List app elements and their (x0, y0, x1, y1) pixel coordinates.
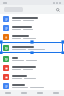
button[interactable] (1, 42, 63, 53)
button[interactable] (0, 32, 64, 41)
button[interactable] (0, 72, 64, 81)
button[interactable] (0, 23, 64, 32)
button[interactable] (0, 63, 64, 72)
button[interactable] (0, 14, 64, 23)
button[interactable] (0, 90, 64, 96)
button[interactable]: Downloads (32, 90, 48, 96)
button[interactable]: Images (16, 90, 32, 96)
button[interactable]: Recent (0, 90, 16, 96)
button[interactable]: Search (55, 7, 61, 13)
button[interactable] (0, 54, 64, 63)
button[interactable] (0, 81, 64, 90)
button[interactable]: Browse (48, 90, 64, 96)
